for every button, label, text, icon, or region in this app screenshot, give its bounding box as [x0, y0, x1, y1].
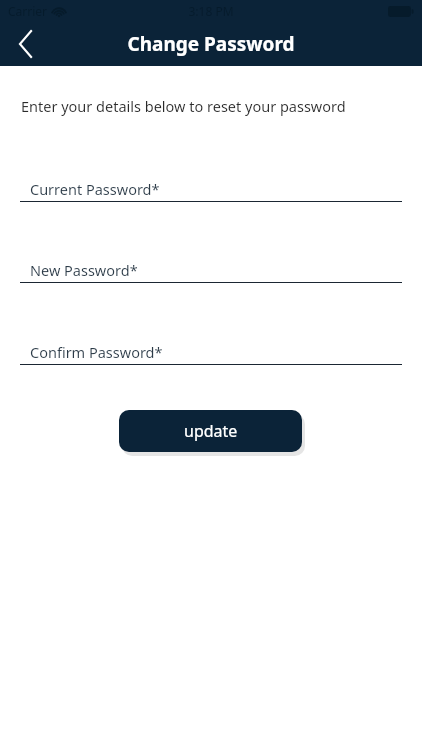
- staticText: update: [184, 420, 238, 442]
- button[interactable]: New Password*: [0, 260, 422, 294]
- staticText: 3:18 PM: [0, 3, 422, 19]
- button[interactable]: Back: [0, 22, 52, 66]
- staticText: Carrier: [8, 3, 48, 19]
- staticText: Change Password: [0, 31, 422, 57]
- staticText: Current Password*: [30, 179, 160, 199]
- staticText: New Password*: [30, 260, 138, 280]
- staticText: Confirm Password*: [30, 342, 163, 362]
- staticText: Enter your details below to reset your p…: [21, 96, 346, 116]
- button[interactable]: update: [119, 410, 302, 452]
- button[interactable]: Current Password*: [0, 179, 422, 213]
- button[interactable]: Confirm Password*: [0, 342, 422, 376]
